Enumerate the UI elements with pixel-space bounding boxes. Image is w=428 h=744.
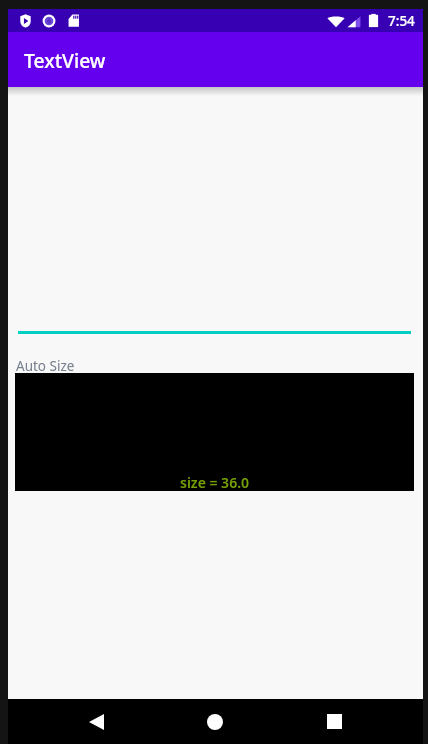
staticText: 7:54 bbox=[388, 12, 415, 30]
button[interactable]: Recents bbox=[314, 699, 354, 744]
staticText: size = 36.0 bbox=[180, 473, 250, 492]
staticText: TextView bbox=[24, 47, 106, 73]
staticText: Auto Size bbox=[16, 357, 75, 375]
button[interactable]: Text field bbox=[18, 99, 411, 334]
button[interactable]: Home bbox=[195, 699, 235, 744]
button[interactable]: Back bbox=[76, 699, 116, 744]
button[interactable]: size = 36.0 bbox=[15, 373, 414, 491]
